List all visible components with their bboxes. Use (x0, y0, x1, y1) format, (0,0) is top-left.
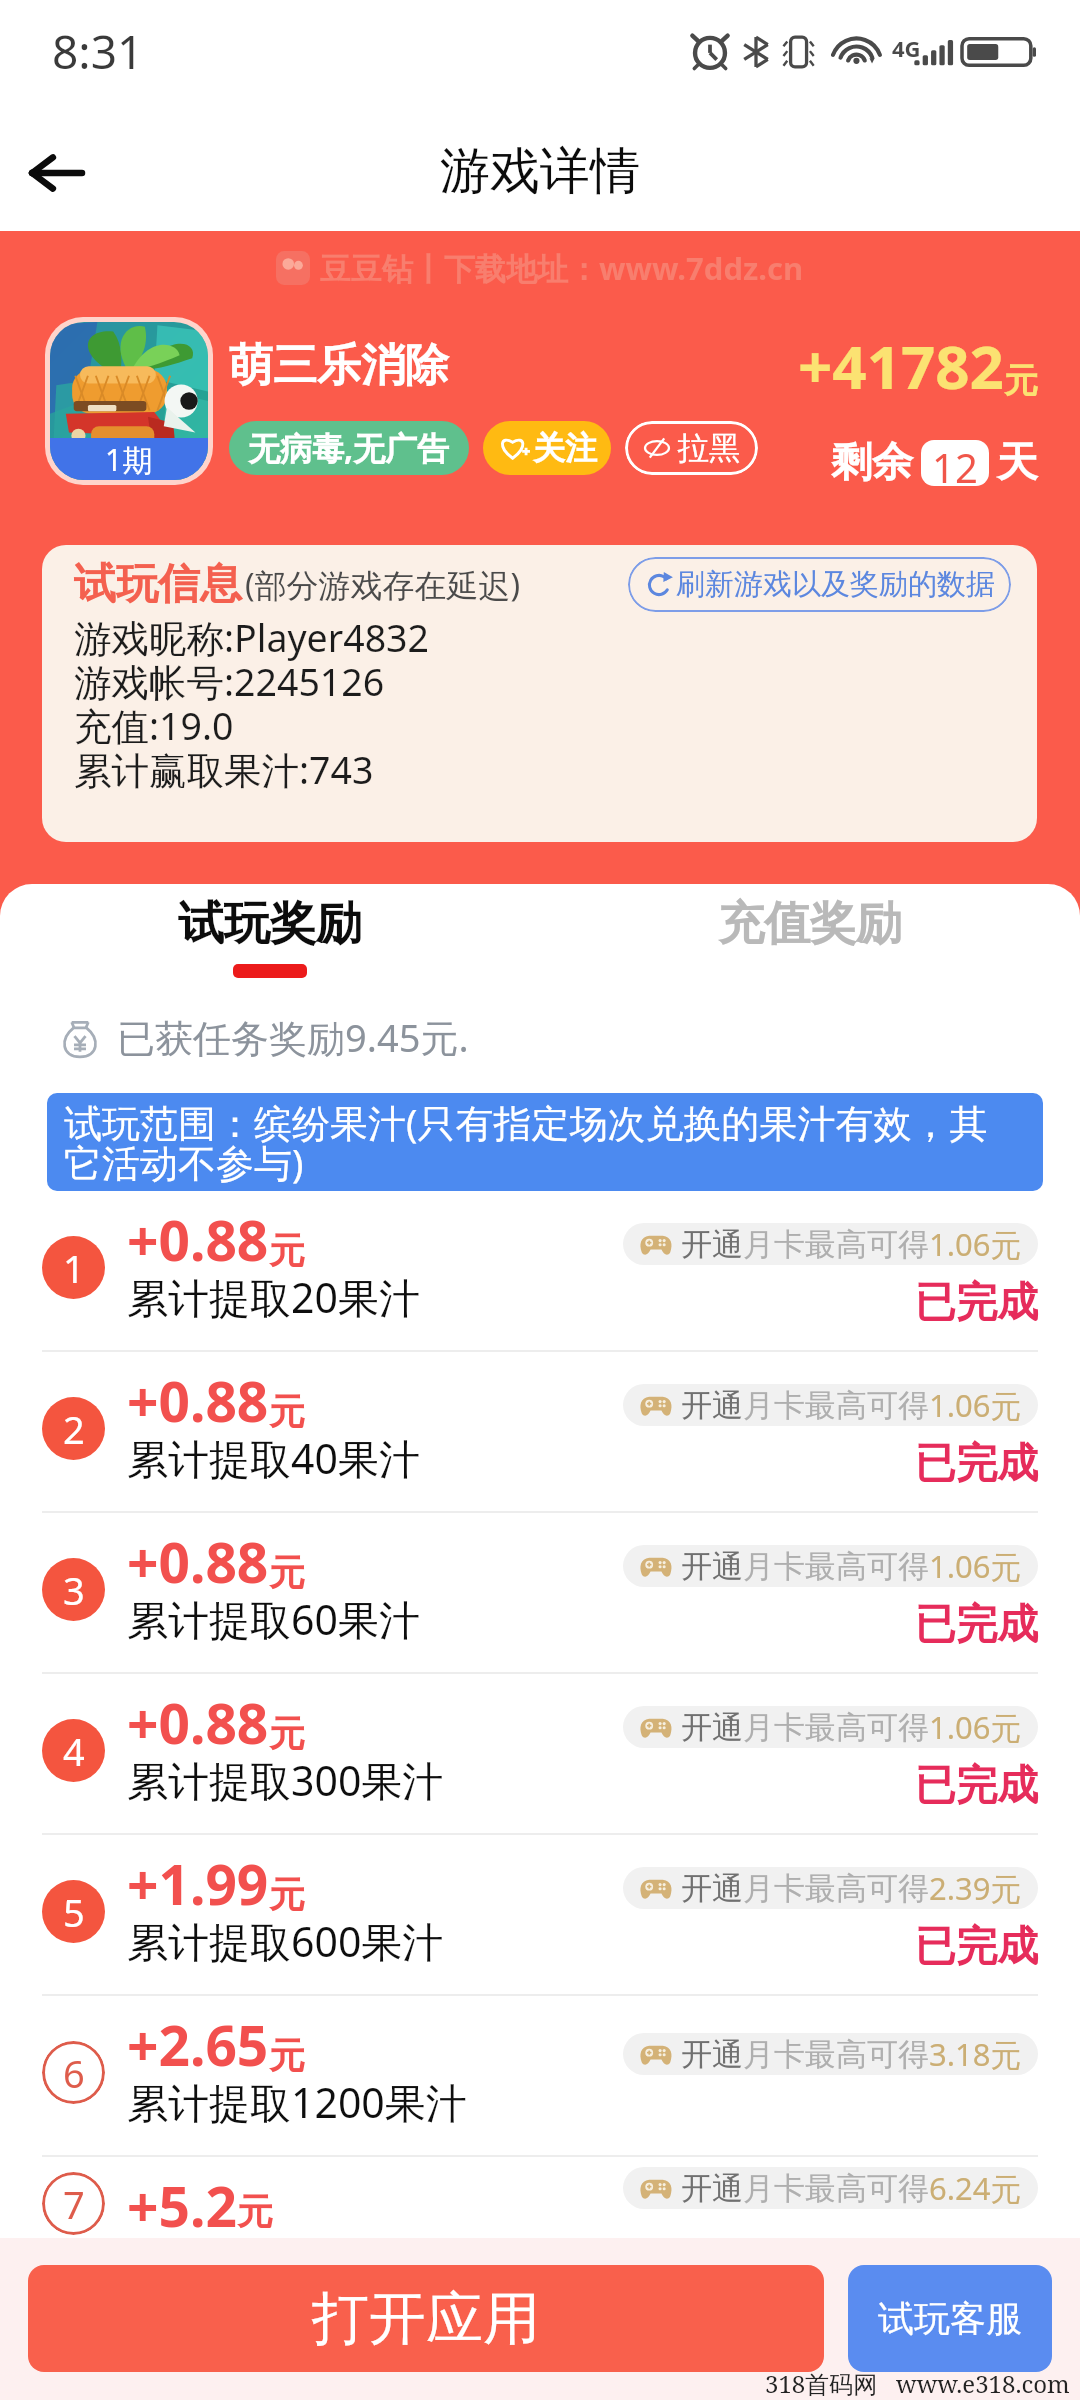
staticText: 拉黑 (677, 428, 741, 468)
button[interactable]: 1期 (50, 322, 208, 480)
staticText: 月卡最高可得 (743, 1869, 929, 1908)
staticText: 剩余 (831, 437, 913, 489)
staticText: 试玩客服 (878, 2296, 1022, 2341)
button[interactable]: 试玩奖励 (0, 895, 540, 978)
staticText: 游戏详情 (440, 140, 640, 203)
staticText: 元 (269, 2033, 305, 2078)
staticText: +0.88 (127, 1202, 269, 1277)
button[interactable]: 1 (0, 1191, 1080, 1352)
staticText: +2.65 (127, 2007, 269, 2082)
staticText: 累计提取60果汁 (127, 1591, 420, 1647)
staticText: 元 (1004, 359, 1038, 402)
staticText: 2 (63, 1403, 85, 1455)
staticText: 元 (269, 1872, 305, 1917)
staticText: 开通 (681, 1386, 743, 1425)
button[interactable]: 4 (0, 1674, 1080, 1835)
staticText: 累计提取600果汁 (127, 1913, 444, 1969)
staticText: 刷新游戏以及奖励的数据 (676, 566, 995, 603)
button[interactable]: 开通 (623, 1545, 1038, 1587)
staticText: 已完成 (915, 1599, 1038, 1651)
staticText: 试玩范围：缤纷果汁(只有指定场次兑换的果汁有效，其 它活动不参与) (64, 1096, 988, 1188)
button[interactable]: 6 (0, 1996, 1080, 2157)
staticText: 已完成 (915, 1438, 1038, 1490)
staticText: 8:31 (52, 20, 144, 83)
staticText: 3.18元 (929, 2033, 1022, 2075)
staticText: +0.88 (127, 1685, 269, 1760)
staticText: 1.06元 (929, 1545, 1022, 1587)
button[interactable]: 2 (0, 1352, 1080, 1513)
button[interactable]: 开通 (623, 1384, 1038, 1426)
staticText: 1.06元 (929, 1384, 1022, 1426)
staticText: 开通 (681, 1869, 743, 1908)
staticText: 元 (269, 1550, 305, 1595)
staticText: 开通 (681, 2169, 743, 2208)
staticText: 1.06元 (929, 1223, 1022, 1265)
button[interactable]: 3 (0, 1513, 1080, 1674)
button[interactable]: 充值奖励 (540, 895, 1080, 953)
staticText: 6 (63, 2047, 85, 2099)
button[interactable]: 7 (0, 2157, 1080, 2238)
button[interactable]: 开通 (623, 1223, 1038, 1265)
staticText: 开通 (681, 1708, 743, 1747)
staticText: 已获任务奖励9.45元. (117, 1011, 469, 1063)
staticText: +5.2 (127, 2168, 237, 2238)
staticText: 元 (269, 1228, 305, 1273)
staticText: 已完成 (915, 1760, 1038, 1812)
button[interactable]: 开通 (623, 2033, 1038, 2075)
staticText: 累计提取20果汁 (127, 1269, 420, 1325)
staticText: 月卡最高可得 (743, 2035, 929, 2074)
staticText: 无病毒,无广告 (248, 426, 450, 470)
staticText: 7 (63, 2178, 85, 2230)
staticText: 累计提取300果汁 (127, 1752, 444, 1808)
staticText: 开通 (681, 1225, 743, 1264)
staticText: (部分游戏存在延迟) (245, 563, 521, 607)
button[interactable]: 刷新游戏以及奖励的数据 (628, 557, 1011, 612)
staticText: 3 (63, 1564, 85, 1616)
staticText: 元 (269, 1389, 305, 1434)
staticText: 开通 (681, 2035, 743, 2074)
staticText: 累计提取40果汁 (127, 1430, 420, 1486)
button[interactable]: 开通 (623, 1867, 1038, 1909)
staticText: +0.88 (127, 1363, 269, 1438)
button[interactable]: 拉黑 (625, 421, 758, 475)
staticText: 试玩信息 (74, 558, 242, 611)
staticText: 12 (932, 440, 978, 486)
staticText: 已完成 (915, 1277, 1038, 1329)
button[interactable]: 无病毒,无广告 (229, 421, 469, 475)
staticText: +1.99 (127, 1846, 269, 1921)
staticText: 豆豆钻丨下载地址：www.7ddz.cn (320, 247, 804, 289)
staticText: 4 (63, 1725, 85, 1777)
staticText: 已完成 (915, 1921, 1038, 1973)
staticText: 萌三乐消除 (229, 338, 449, 393)
staticText: +0.88 (127, 1524, 269, 1599)
staticText: 开通 (681, 1547, 743, 1586)
staticText: 元 (269, 1711, 305, 1756)
staticText: 2.39元 (929, 1867, 1022, 1909)
button[interactable]: 开通 (623, 1706, 1038, 1748)
staticText: 月卡最高可得 (743, 1708, 929, 1747)
staticText: 5 (63, 1886, 85, 1938)
staticText: 月卡最高可得 (743, 1225, 929, 1264)
staticText: 1.06元 (929, 1706, 1022, 1748)
staticText: 天 (997, 437, 1038, 489)
staticText: 1期 (105, 439, 153, 480)
staticText: 4G (892, 33, 921, 63)
button[interactable]: Back (16, 133, 96, 213)
button[interactable]: 关注 (483, 421, 611, 475)
staticText: 试玩奖励 (178, 895, 362, 953)
staticText: 充值奖励 (718, 895, 902, 953)
staticText: 月卡最高可得 (743, 2169, 929, 2208)
staticText: 关注 (533, 428, 597, 468)
button[interactable]: 5 (0, 1835, 1080, 1996)
button[interactable]: 打开应用 (28, 2265, 824, 2372)
staticText: 游戏昵称:Player4832 游戏帐号:2245126 充值:19.0 累计赢… (74, 612, 430, 795)
staticText: +41782 (798, 325, 1004, 407)
staticText: 元 (237, 2189, 273, 2234)
staticText: 累计提取1200果汁 (127, 2074, 467, 2130)
staticText: 打开应用 (312, 2283, 540, 2355)
staticText: 月卡最高可得 (743, 1547, 929, 1586)
button[interactable]: 开通 (623, 2167, 1038, 2209)
staticText: 月卡最高可得 (743, 1386, 929, 1425)
staticText: 6.24元 (929, 2167, 1022, 2209)
button[interactable]: 试玩客服 (848, 2265, 1052, 2372)
